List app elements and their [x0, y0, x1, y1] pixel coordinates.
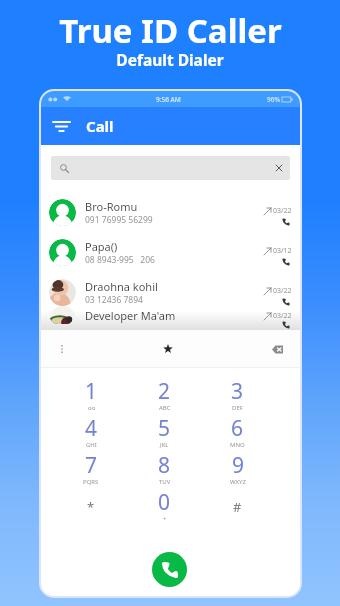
button[interactable]: 0	[128, 488, 201, 525]
staticText: 0	[158, 488, 171, 517]
button[interactable]: 9	[201, 451, 274, 488]
staticText: Developer Ma'am	[85, 308, 176, 323]
staticText: 2	[158, 377, 171, 406]
button[interactable]: Menu	[50, 115, 72, 137]
button[interactable]: Call	[152, 552, 187, 587]
button[interactable]: 5	[128, 414, 201, 451]
staticText: 03/22	[273, 311, 292, 321]
staticText: 03 12436 7894	[85, 294, 143, 306]
button[interactable]: Search contacts	[51, 156, 290, 180]
button[interactable]: 3	[201, 377, 274, 414]
button[interactable]: Call contact	[280, 321, 292, 329]
staticText: +	[163, 515, 167, 523]
staticText: Call	[86, 116, 114, 136]
button[interactable]: Clear	[271, 160, 287, 176]
staticText: 4	[85, 414, 98, 443]
staticText: DEF	[232, 404, 243, 412]
button[interactable]: 7	[54, 451, 128, 488]
button[interactable]: Call contact	[280, 256, 292, 268]
staticText: oo	[88, 404, 96, 412]
button[interactable]: 6	[201, 414, 274, 451]
staticText: Default Dialer	[116, 49, 224, 70]
staticText: GHI	[86, 441, 97, 449]
button[interactable]: 4	[54, 414, 128, 451]
button[interactable]: Draohna kohil	[41, 272, 300, 312]
staticText: 03/12	[273, 246, 292, 256]
staticText: JKL	[160, 441, 169, 449]
staticText: #	[233, 498, 242, 516]
staticText: 9:56 AM	[156, 95, 181, 104]
button[interactable]: *	[54, 488, 128, 525]
button[interactable]: Favourites	[158, 339, 178, 359]
staticText: ABC	[159, 404, 171, 412]
button[interactable]: 1	[54, 377, 128, 414]
staticText: 03/22	[273, 206, 292, 216]
staticText: MNO	[230, 441, 245, 449]
button[interactable]: More options	[54, 341, 70, 357]
staticText: 091 76995 56299	[85, 214, 153, 226]
staticText: 7	[85, 451, 98, 480]
staticText: 96%	[267, 95, 280, 104]
staticText: 03/22	[273, 286, 292, 296]
staticText: *	[87, 498, 95, 516]
staticText: 08 8943-995 206	[85, 254, 155, 266]
staticText: PQRS	[83, 478, 99, 486]
staticText: 1	[85, 377, 98, 406]
button[interactable]: Call contact	[280, 296, 292, 308]
staticText: TUV	[159, 478, 171, 486]
staticText: 3	[231, 377, 244, 406]
staticText: 9	[232, 451, 245, 480]
staticText: Bro-Romu	[85, 199, 138, 214]
staticText: Papa()	[85, 239, 118, 254]
button[interactable]: Bro-Romu	[41, 192, 300, 232]
button[interactable]: Call contact	[280, 216, 292, 228]
staticText: Draohna kohil	[85, 279, 158, 294]
button[interactable]: Papa()	[41, 232, 300, 272]
staticText: 5	[158, 414, 171, 443]
button[interactable]: Developer Ma'am	[41, 312, 300, 330]
staticText: WXYZ	[230, 478, 246, 486]
staticText: True ID Caller	[59, 8, 282, 53]
button[interactable]: 8	[128, 451, 201, 488]
button[interactable]: #	[201, 488, 274, 525]
button[interactable]: 2	[128, 377, 201, 414]
staticText: 6	[231, 414, 244, 443]
button[interactable]: Backspace	[267, 339, 287, 359]
staticText: 8	[158, 451, 171, 480]
